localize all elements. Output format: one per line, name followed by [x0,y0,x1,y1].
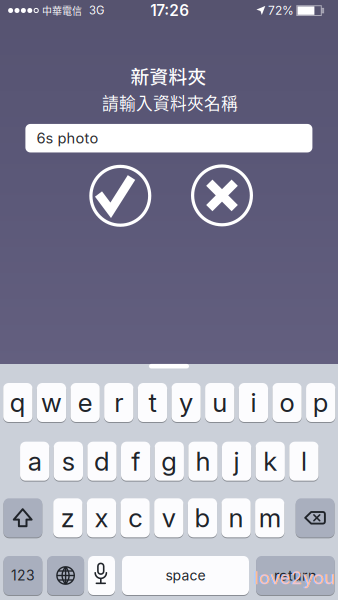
button[interactable]: t [138,383,167,422]
button[interactable]: d [87,442,117,481]
button[interactable]: Numbers [3,556,42,595]
button[interactable]: z [53,498,82,537]
button[interactable]: b [188,498,217,537]
staticText: e [78,387,93,418]
staticText: p [313,387,329,418]
button[interactable]: return [256,556,335,595]
button[interactable]: r [104,383,133,422]
staticText: f [131,445,140,477]
staticText: a [28,445,42,477]
staticText: x [94,502,108,534]
staticText: b [194,502,210,534]
staticText: 請輸入資料夾名稱 [102,90,238,114]
staticText: 新資料夾 [130,62,206,89]
button[interactable]: x [87,498,116,537]
button[interactable]: c [120,498,150,537]
button[interactable]: Shift [3,498,42,537]
staticText: u [212,387,227,418]
button[interactable]: k [256,442,285,481]
button[interactable]: h [188,442,218,481]
button[interactable]: Next keyboard [47,556,84,595]
staticText: return [274,567,317,584]
staticText: q [10,387,26,418]
staticText: 3G [89,4,104,17]
staticText: d [94,445,110,477]
staticText: space [165,567,205,584]
staticText: c [128,502,142,534]
button[interactable]: m [255,498,284,537]
button[interactable]: q [3,383,32,422]
staticText: m [259,502,281,534]
button[interactable]: j [222,442,251,481]
staticText: s [62,445,75,477]
staticText: r [114,387,123,418]
button[interactable]: n [221,498,251,537]
button[interactable]: w [37,383,66,422]
button[interactable]: f [121,442,150,481]
staticText: g [161,445,177,477]
staticText: t [148,387,156,418]
button[interactable]: e [70,383,100,422]
staticText: 17:26 [150,1,189,20]
staticText: 中華電信 [42,3,82,18]
staticText: 72% [268,3,294,18]
button[interactable]: Delete [296,498,334,537]
staticText: w [41,387,62,418]
staticText: love2you [253,566,334,589]
button[interactable]: o [272,383,302,422]
staticText: z [61,502,75,534]
button[interactable]: g [155,442,184,481]
button[interactable]: v [154,498,183,537]
button[interactable]: Confirm [87,163,153,229]
button[interactable]: Dictate [88,556,115,595]
button[interactable]: p [306,383,335,422]
staticText: v [162,502,176,534]
staticText: o [280,387,295,418]
staticText: l [301,445,307,477]
button[interactable]: y [171,383,201,422]
staticText: j [234,445,240,477]
button[interactable]: u [205,383,234,422]
button[interactable]: Cancel [189,162,255,228]
staticText: h [195,445,210,477]
staticText: 123 [11,567,35,584]
staticText: 6s photo [36,129,98,147]
button[interactable]: s [54,442,83,481]
staticText: n [229,502,244,534]
button[interactable]: l [289,442,318,481]
staticText: y [179,387,193,418]
button[interactable]: 6s photo [25,124,312,152]
button[interactable]: a [20,442,49,481]
button[interactable]: space [122,556,249,595]
staticText: k [263,445,277,477]
staticText: i [250,387,256,418]
button[interactable]: i [239,383,268,422]
